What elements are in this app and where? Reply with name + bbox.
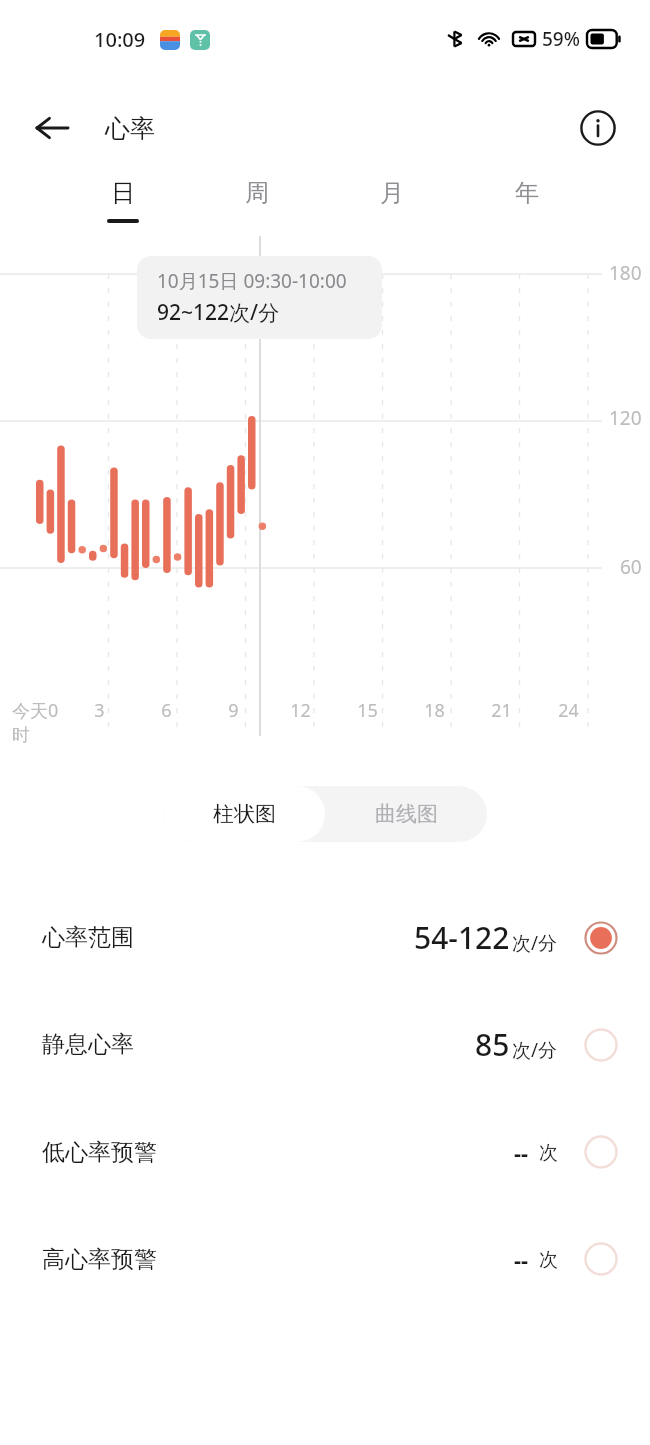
button[interactable]: 低心率预警 bbox=[0, 1098, 650, 1205]
staticText: 高心率预警 bbox=[42, 1245, 157, 1274]
button[interactable]: 月 bbox=[324, 178, 459, 256]
button[interactable]: Back bbox=[26, 102, 78, 154]
staticText: 日 bbox=[111, 178, 135, 208]
staticText: 59% bbox=[542, 26, 580, 52]
staticText: 60 bbox=[620, 554, 642, 580]
button[interactable]: 心率范围 bbox=[0, 884, 650, 991]
staticText: -- bbox=[514, 1137, 529, 1167]
staticText: 心率 bbox=[105, 113, 155, 144]
staticText: 次/分 bbox=[512, 1037, 558, 1063]
button[interactable]: Info bbox=[572, 102, 624, 154]
staticText: 年 bbox=[515, 178, 539, 208]
staticText: 10月15日 09:30-10:00 bbox=[157, 268, 347, 294]
staticText: 180 bbox=[609, 260, 642, 286]
button[interactable]: 曲线图 bbox=[325, 786, 487, 842]
staticText: 静息心率 bbox=[42, 1030, 134, 1059]
staticText: 3 bbox=[66, 698, 133, 723]
staticText: 低心率预警 bbox=[42, 1138, 157, 1167]
staticText: 10:09 bbox=[94, 26, 146, 53]
staticText: 85 bbox=[475, 1024, 510, 1065]
staticText: 次 bbox=[539, 1248, 558, 1272]
staticText: 曲线图 bbox=[375, 801, 438, 827]
staticText: -- bbox=[514, 1244, 529, 1274]
staticText: 15 bbox=[334, 698, 401, 723]
staticText: 次 bbox=[539, 1141, 558, 1165]
staticText: 12 bbox=[267, 698, 334, 723]
staticText: 24 bbox=[535, 698, 602, 723]
staticText: 月 bbox=[380, 178, 404, 208]
staticText: 92~122次/分 bbox=[157, 298, 280, 327]
staticText: 21 bbox=[468, 698, 535, 723]
button[interactable]: 年 bbox=[459, 178, 594, 256]
button[interactable]: 柱状图 bbox=[163, 786, 325, 842]
button[interactable]: 日 bbox=[56, 178, 190, 256]
staticText: 18 bbox=[401, 698, 468, 723]
staticText: 9 bbox=[200, 698, 267, 723]
staticText: 今天0时 bbox=[12, 698, 66, 746]
staticText: 6 bbox=[133, 698, 200, 723]
staticText: 周 bbox=[245, 178, 269, 208]
button[interactable]: 高心率预警 bbox=[0, 1205, 650, 1312]
staticText: 次/分 bbox=[512, 930, 558, 956]
button[interactable]: 静息心率 bbox=[0, 991, 650, 1098]
staticText: 120 bbox=[609, 405, 642, 431]
staticText: 54-122 bbox=[414, 917, 510, 958]
button[interactable]: 周 bbox=[190, 178, 324, 256]
staticText: 心率范围 bbox=[42, 923, 134, 952]
staticText: 柱状图 bbox=[213, 801, 276, 827]
